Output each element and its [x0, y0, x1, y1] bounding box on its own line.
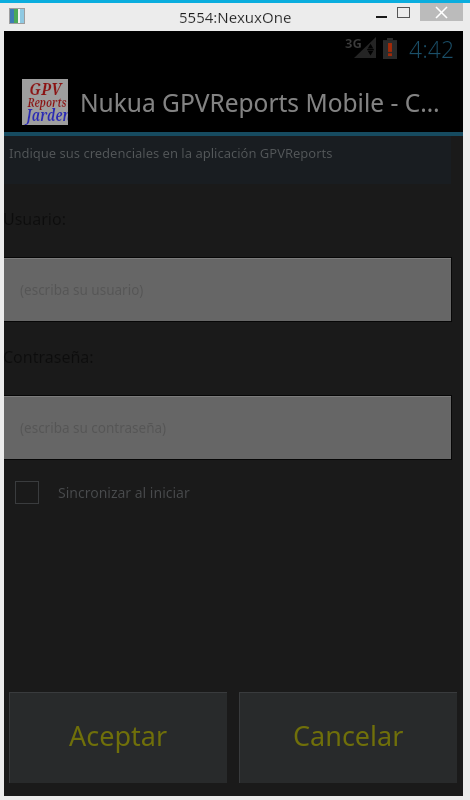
staticText: Usuario: [3, 208, 66, 230]
button[interactable]: Aceptar [10, 693, 227, 783]
button[interactable]: (escriba su contraseña) [4, 396, 451, 459]
staticText: Contraseña: [3, 346, 94, 368]
button[interactable]: (escriba su usuario) [4, 258, 451, 321]
staticText: Indique sus credenciales en la aplicació… [9, 144, 333, 162]
staticText: 3G [345, 34, 362, 52]
staticText: 5554:NexuxOne [179, 7, 292, 27]
button[interactable]: Close [420, 3, 463, 21]
staticText: (escriba su usuario) [20, 281, 144, 299]
staticText: Reports [27, 93, 62, 111]
staticText: Jarden [27, 104, 63, 125]
button[interactable]: Maximize [386, 3, 420, 21]
button[interactable]: Sincronizar al iniciar [15, 481, 190, 504]
staticText: GPV [29, 79, 62, 100]
button[interactable]: Minimize [360, 3, 404, 21]
button[interactable]: Cancelar [240, 693, 457, 783]
staticText: Nukua GPVReports Mobile - C… [80, 86, 440, 119]
staticText: (escriba su contraseña) [20, 419, 167, 437]
staticText: Cancelar [293, 717, 404, 754]
staticText: Sincronizar al iniciar [58, 483, 190, 502]
staticText: Aceptar [69, 717, 168, 754]
staticText: 4:42 [409, 33, 455, 64]
